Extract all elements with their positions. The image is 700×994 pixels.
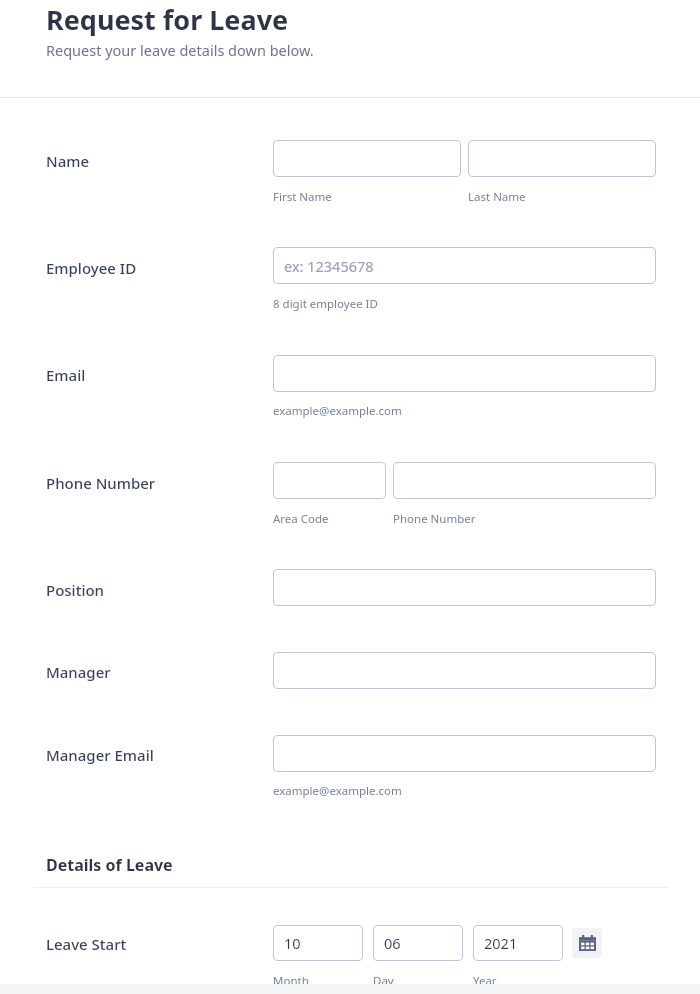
- staticText: Manager: [46, 662, 111, 682]
- staticText: example@example.com: [273, 403, 402, 419]
- button[interactable]: ex: 12345678: [273, 247, 656, 284]
- staticText: Leave Start: [46, 934, 127, 954]
- staticText: 8 digit employee ID: [273, 296, 378, 312]
- staticText: Details of Leave: [46, 854, 173, 876]
- button[interactable]: [393, 462, 656, 499]
- button[interactable]: [273, 569, 656, 606]
- button[interactable]: 10: [273, 925, 363, 961]
- staticText: Phone Number: [393, 511, 476, 527]
- staticText: Manager Email: [46, 745, 154, 765]
- staticText: Last Name: [468, 189, 526, 205]
- staticText: example@example.com: [273, 783, 402, 799]
- button[interactable]: [468, 140, 656, 177]
- button[interactable]: [273, 735, 656, 772]
- staticText: Name: [46, 151, 90, 171]
- staticText: Year: [473, 973, 497, 989]
- staticText: Day: [373, 973, 394, 989]
- staticText: 2021: [484, 933, 518, 953]
- staticText: Position: [46, 580, 105, 600]
- button[interactable]: [273, 462, 386, 499]
- button[interactable]: [273, 140, 461, 177]
- staticText: Month: [273, 973, 309, 989]
- staticText: Employee ID: [46, 258, 137, 278]
- staticText: Request for Leave: [46, 1, 289, 38]
- button[interactable]: 06: [373, 925, 463, 961]
- staticText: Area Code: [273, 511, 329, 527]
- button[interactable]: [273, 652, 656, 689]
- staticText: 10: [284, 933, 301, 953]
- staticText: Email: [46, 365, 86, 385]
- staticText: Request your leave details down below.: [46, 40, 314, 60]
- button[interactable]: Open calendar picker: [572, 928, 602, 958]
- staticText: Phone Number: [46, 473, 156, 493]
- button[interactable]: [273, 355, 656, 392]
- button[interactable]: 2021: [473, 925, 563, 961]
- staticText: First Name: [273, 189, 332, 205]
- staticText: 06: [384, 933, 401, 953]
- staticText: ex: 12345678: [284, 256, 374, 276]
